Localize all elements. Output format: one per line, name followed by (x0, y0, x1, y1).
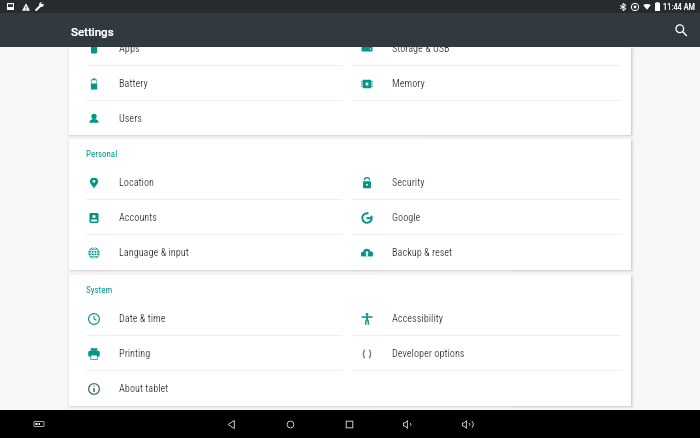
button[interactable]: Memory (342, 66, 631, 101)
button[interactable]: Battery (69, 66, 342, 101)
button[interactable]: Location (69, 165, 342, 200)
button[interactable]: Developer options (342, 336, 631, 371)
button[interactable]: Volume up (455, 412, 479, 436)
staticText: Accessibility (392, 313, 443, 325)
button[interactable]: Printing (69, 336, 342, 371)
button[interactable]: Accessibility (342, 301, 631, 336)
staticText: Storage & USB (392, 47, 450, 55)
staticText: Battery (119, 78, 148, 90)
button[interactable]: Language & input (69, 235, 342, 270)
button[interactable]: About tablet (69, 371, 342, 406)
staticText: Apps (119, 47, 140, 55)
button[interactable]: Date & time (69, 301, 342, 336)
staticText: Backup & reset (392, 247, 453, 259)
staticText: Printing (119, 348, 151, 360)
staticText: Settings (71, 25, 114, 38)
button[interactable]: Keyboard (28, 413, 50, 435)
button[interactable]: Storage & USB (342, 47, 631, 66)
button[interactable]: Users (69, 101, 342, 135)
staticText: Accounts (119, 212, 157, 224)
staticText: Users (119, 113, 142, 125)
staticText: Developer options (392, 348, 465, 360)
button[interactable]: Recents (337, 412, 361, 436)
button[interactable]: Backup & reset (342, 235, 631, 270)
staticText: About tablet (119, 383, 169, 395)
staticText: Security (392, 177, 425, 189)
button[interactable]: Google (342, 200, 631, 235)
button[interactable]: Volume down (396, 412, 420, 436)
button[interactable]: Apps (69, 47, 342, 66)
button[interactable]: Back (219, 412, 243, 436)
staticText: Language & input (119, 247, 189, 259)
staticText: Location (119, 177, 154, 189)
button[interactable]: Search (668, 17, 694, 43)
staticText: Date & time (119, 313, 166, 325)
staticText: Memory (392, 78, 425, 90)
staticText: Personal (86, 149, 118, 160)
staticText: System (86, 285, 113, 296)
staticText: Google (392, 212, 421, 224)
button[interactable]: Accounts (69, 200, 342, 235)
staticText: 11:44 AM (663, 2, 696, 12)
button[interactable]: Security (342, 165, 631, 200)
button[interactable]: Home (278, 412, 302, 436)
